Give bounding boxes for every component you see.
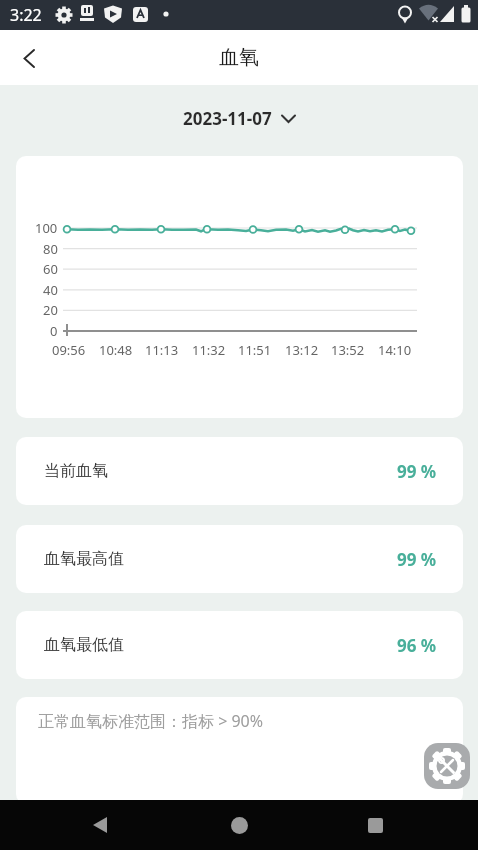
button[interactable]: 当前血氧 bbox=[16, 437, 463, 505]
staticText: 2023-11-07 bbox=[183, 107, 272, 130]
button[interactable]: 血氧最高值 bbox=[16, 525, 463, 593]
staticText: 血氧最高值 bbox=[44, 549, 124, 569]
staticText: 血氧 bbox=[219, 45, 259, 70]
staticText: 11:32 bbox=[192, 341, 226, 359]
staticText: 20 bbox=[43, 301, 58, 319]
button[interactable] bbox=[357, 807, 393, 843]
button[interactable]: 2023-11-07 bbox=[175, 101, 303, 136]
staticText: 0 bbox=[50, 322, 58, 340]
button[interactable] bbox=[82, 807, 118, 843]
staticText: 11:51 bbox=[238, 341, 272, 359]
staticText: 99 % bbox=[397, 548, 437, 571]
staticText: 100 bbox=[35, 219, 58, 237]
staticText: 3:22 bbox=[10, 4, 42, 26]
staticText: 13:52 bbox=[331, 341, 365, 359]
staticText: 当前血氧 bbox=[44, 461, 108, 481]
staticText: 40 bbox=[43, 281, 58, 299]
staticText: 血氧最低值 bbox=[44, 635, 124, 655]
staticText: 99 % bbox=[397, 460, 437, 483]
staticText: 80 bbox=[43, 240, 58, 258]
staticText: 11:13 bbox=[145, 341, 179, 359]
button[interactable] bbox=[12, 42, 44, 74]
staticText: 10:48 bbox=[99, 341, 133, 359]
staticText: 13:12 bbox=[285, 341, 319, 359]
staticText: 14:10 bbox=[378, 341, 412, 359]
staticText: 09:56 bbox=[52, 341, 86, 359]
button[interactable] bbox=[424, 743, 470, 789]
button[interactable]: 血氧最低值 bbox=[16, 611, 463, 679]
button[interactable] bbox=[221, 807, 257, 843]
staticText: 96 % bbox=[397, 634, 437, 657]
staticText: 正常血氧标准范围：指标 > 90% bbox=[38, 710, 264, 732]
staticText: 60 bbox=[43, 260, 58, 278]
